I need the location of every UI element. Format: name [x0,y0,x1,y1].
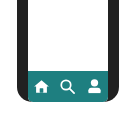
button[interactable]: Profile [81,71,108,102]
button[interactable]: Search [54,71,81,102]
button[interactable]: Home [28,71,54,102]
